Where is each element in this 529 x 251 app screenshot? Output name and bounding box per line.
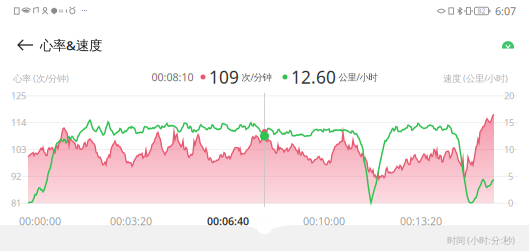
staticText: 103	[11, 143, 26, 156]
staticText: 心率&速度	[40, 36, 102, 54]
staticText: 10	[504, 143, 514, 156]
staticText: 15	[504, 116, 514, 129]
staticText: 心率 (次/分钟)	[13, 72, 69, 84]
staticText: 20	[504, 89, 514, 102]
staticText: 92	[11, 170, 21, 182]
staticText: 00:10:00	[303, 214, 345, 228]
staticText: 00:06:40	[207, 214, 249, 228]
button[interactable]: 同步到云端	[493, 30, 529, 60]
staticText: 125	[11, 89, 26, 102]
staticText: 时间 (小时:分:秒)	[447, 234, 515, 246]
staticText: 速度 (公里/小时)	[443, 72, 508, 84]
staticText: 12.60	[291, 65, 336, 88]
staticText: ···	[81, 6, 87, 16]
staticText: 0	[508, 197, 513, 209]
button[interactable]: 返回	[0, 30, 40, 60]
staticText: 109	[209, 65, 239, 88]
staticText: 次/分钟	[241, 71, 271, 83]
staticText: 00:13:20	[400, 214, 442, 228]
staticText: 00:03:20	[110, 214, 152, 228]
staticText: 00:08:10	[151, 70, 193, 84]
staticText: 5	[508, 170, 513, 182]
staticText: 00:00:00	[19, 214, 61, 228]
staticText: 6:07	[495, 4, 516, 18]
staticText: 114	[11, 116, 26, 129]
staticText: 81	[11, 197, 21, 209]
staticText: 公里/小时	[338, 71, 377, 83]
staticText: 82	[477, 7, 485, 15]
